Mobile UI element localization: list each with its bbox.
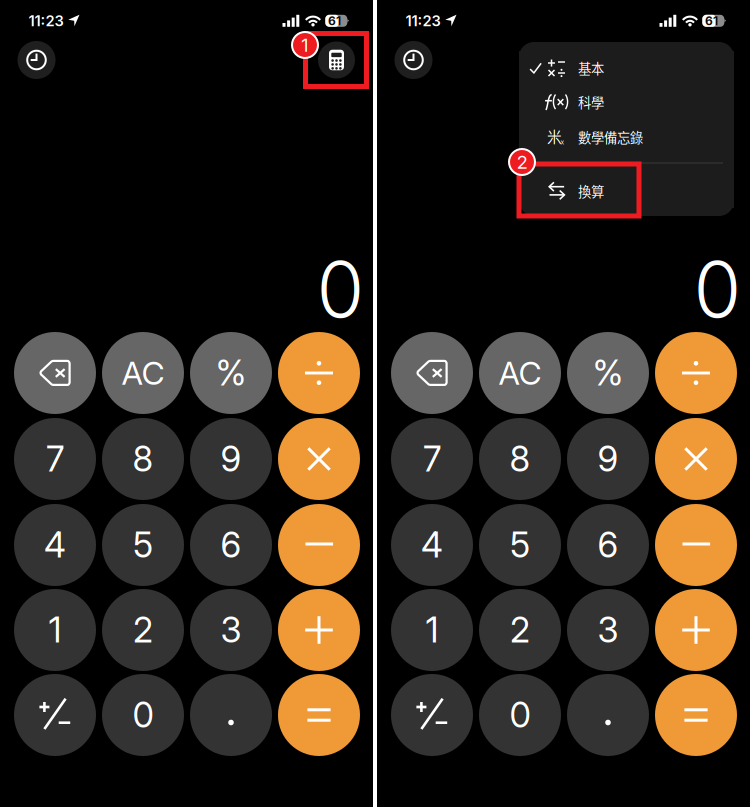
button[interactable]: 9 [567, 418, 649, 500]
staticText: AC [121, 354, 164, 392]
staticText: 9 [220, 438, 241, 480]
button[interactable]: 5 [479, 504, 561, 586]
button[interactable]: Delete [14, 332, 96, 414]
staticText: 6 [220, 524, 241, 566]
button[interactable]: Add [278, 589, 360, 671]
button[interactable]: 基本 [519, 51, 734, 85]
staticText: 3 [597, 609, 618, 651]
button[interactable]: 1 [14, 589, 96, 671]
staticText: 1 [425, 609, 438, 651]
button[interactable]: Plus minus [391, 674, 473, 756]
staticText: 2 [133, 609, 153, 651]
staticText: 8 [132, 438, 153, 480]
button[interactable]: 科學 [519, 85, 734, 119]
staticText: 11:23 [28, 12, 63, 30]
button[interactable]: 7 [391, 418, 473, 500]
staticText: % [215, 352, 246, 394]
button[interactable]: Divide [278, 332, 360, 414]
staticText: x [560, 138, 564, 146]
button[interactable]: 7 [14, 418, 96, 500]
staticText: 3 [220, 609, 241, 651]
staticText: 11:23 [405, 12, 440, 30]
button[interactable]: 6 [190, 504, 272, 586]
staticText: 61 [328, 13, 341, 28]
button[interactable]: Plus minus [14, 674, 96, 756]
button[interactable]: 8 [479, 418, 561, 500]
button[interactable]: Delete [391, 332, 473, 414]
staticText: 5 [133, 524, 153, 566]
button[interactable]: Add [655, 589, 737, 671]
button[interactable]: 4 [391, 504, 473, 586]
staticText: 5 [510, 524, 530, 566]
staticText: 2 [510, 609, 530, 651]
button[interactable]: Equals [655, 674, 737, 756]
button[interactable]: Subtract [655, 504, 737, 586]
staticText: 8 [509, 438, 530, 480]
button[interactable]: 米 [519, 120, 734, 154]
staticText: % [592, 352, 623, 394]
button[interactable]: Decimal point [567, 674, 649, 756]
button[interactable]: Multiply [655, 418, 737, 500]
button[interactable]: Calculator mode [318, 41, 355, 78]
staticText: 1 [48, 609, 61, 651]
button[interactable]: 6 [567, 504, 649, 586]
button[interactable]: Divide [655, 332, 737, 414]
button[interactable]: 9 [190, 418, 272, 500]
button[interactable]: 換算 [519, 174, 734, 208]
staticText: 7 [423, 438, 441, 480]
button[interactable]: History [394, 41, 432, 79]
staticText: 0 [509, 694, 530, 736]
button[interactable]: 8 [102, 418, 184, 500]
staticText: 9 [597, 438, 618, 480]
button[interactable]: Decimal point [190, 674, 272, 756]
button[interactable]: Equals [278, 674, 360, 756]
button[interactable]: 1 [391, 589, 473, 671]
staticText: 換算 [578, 181, 604, 201]
staticText: 米 [547, 125, 562, 147]
button[interactable]: 0 [479, 674, 561, 756]
staticText: 基本 [578, 58, 604, 78]
staticText: 4 [44, 524, 66, 566]
button[interactable]: Multiply [278, 418, 360, 500]
staticText: 科學 [578, 92, 604, 112]
button[interactable]: Subtract [278, 504, 360, 586]
staticText: 6 [597, 524, 618, 566]
staticText: AC [498, 354, 541, 392]
button[interactable]: % [567, 332, 649, 414]
button[interactable]: 3 [567, 589, 649, 671]
staticText: 0 [316, 242, 364, 336]
staticText: 數學備忘錄 [578, 127, 643, 147]
staticText: 0 [132, 694, 153, 736]
staticText: 2 [516, 151, 527, 173]
button[interactable]: 2 [479, 589, 561, 671]
button[interactable]: History [17, 41, 55, 79]
staticText: 0 [693, 242, 741, 336]
button[interactable]: AC [479, 332, 561, 414]
button[interactable]: AC [102, 332, 184, 414]
button[interactable]: 3 [190, 589, 272, 671]
staticText: 4 [421, 524, 443, 566]
staticText: 7 [46, 438, 64, 480]
button[interactable]: 5 [102, 504, 184, 586]
button[interactable]: 4 [14, 504, 96, 586]
staticText: 61 [705, 13, 718, 28]
button[interactable]: % [190, 332, 272, 414]
button[interactable]: 2 [102, 589, 184, 671]
staticText: 1 [301, 34, 309, 56]
button[interactable]: 0 [102, 674, 184, 756]
